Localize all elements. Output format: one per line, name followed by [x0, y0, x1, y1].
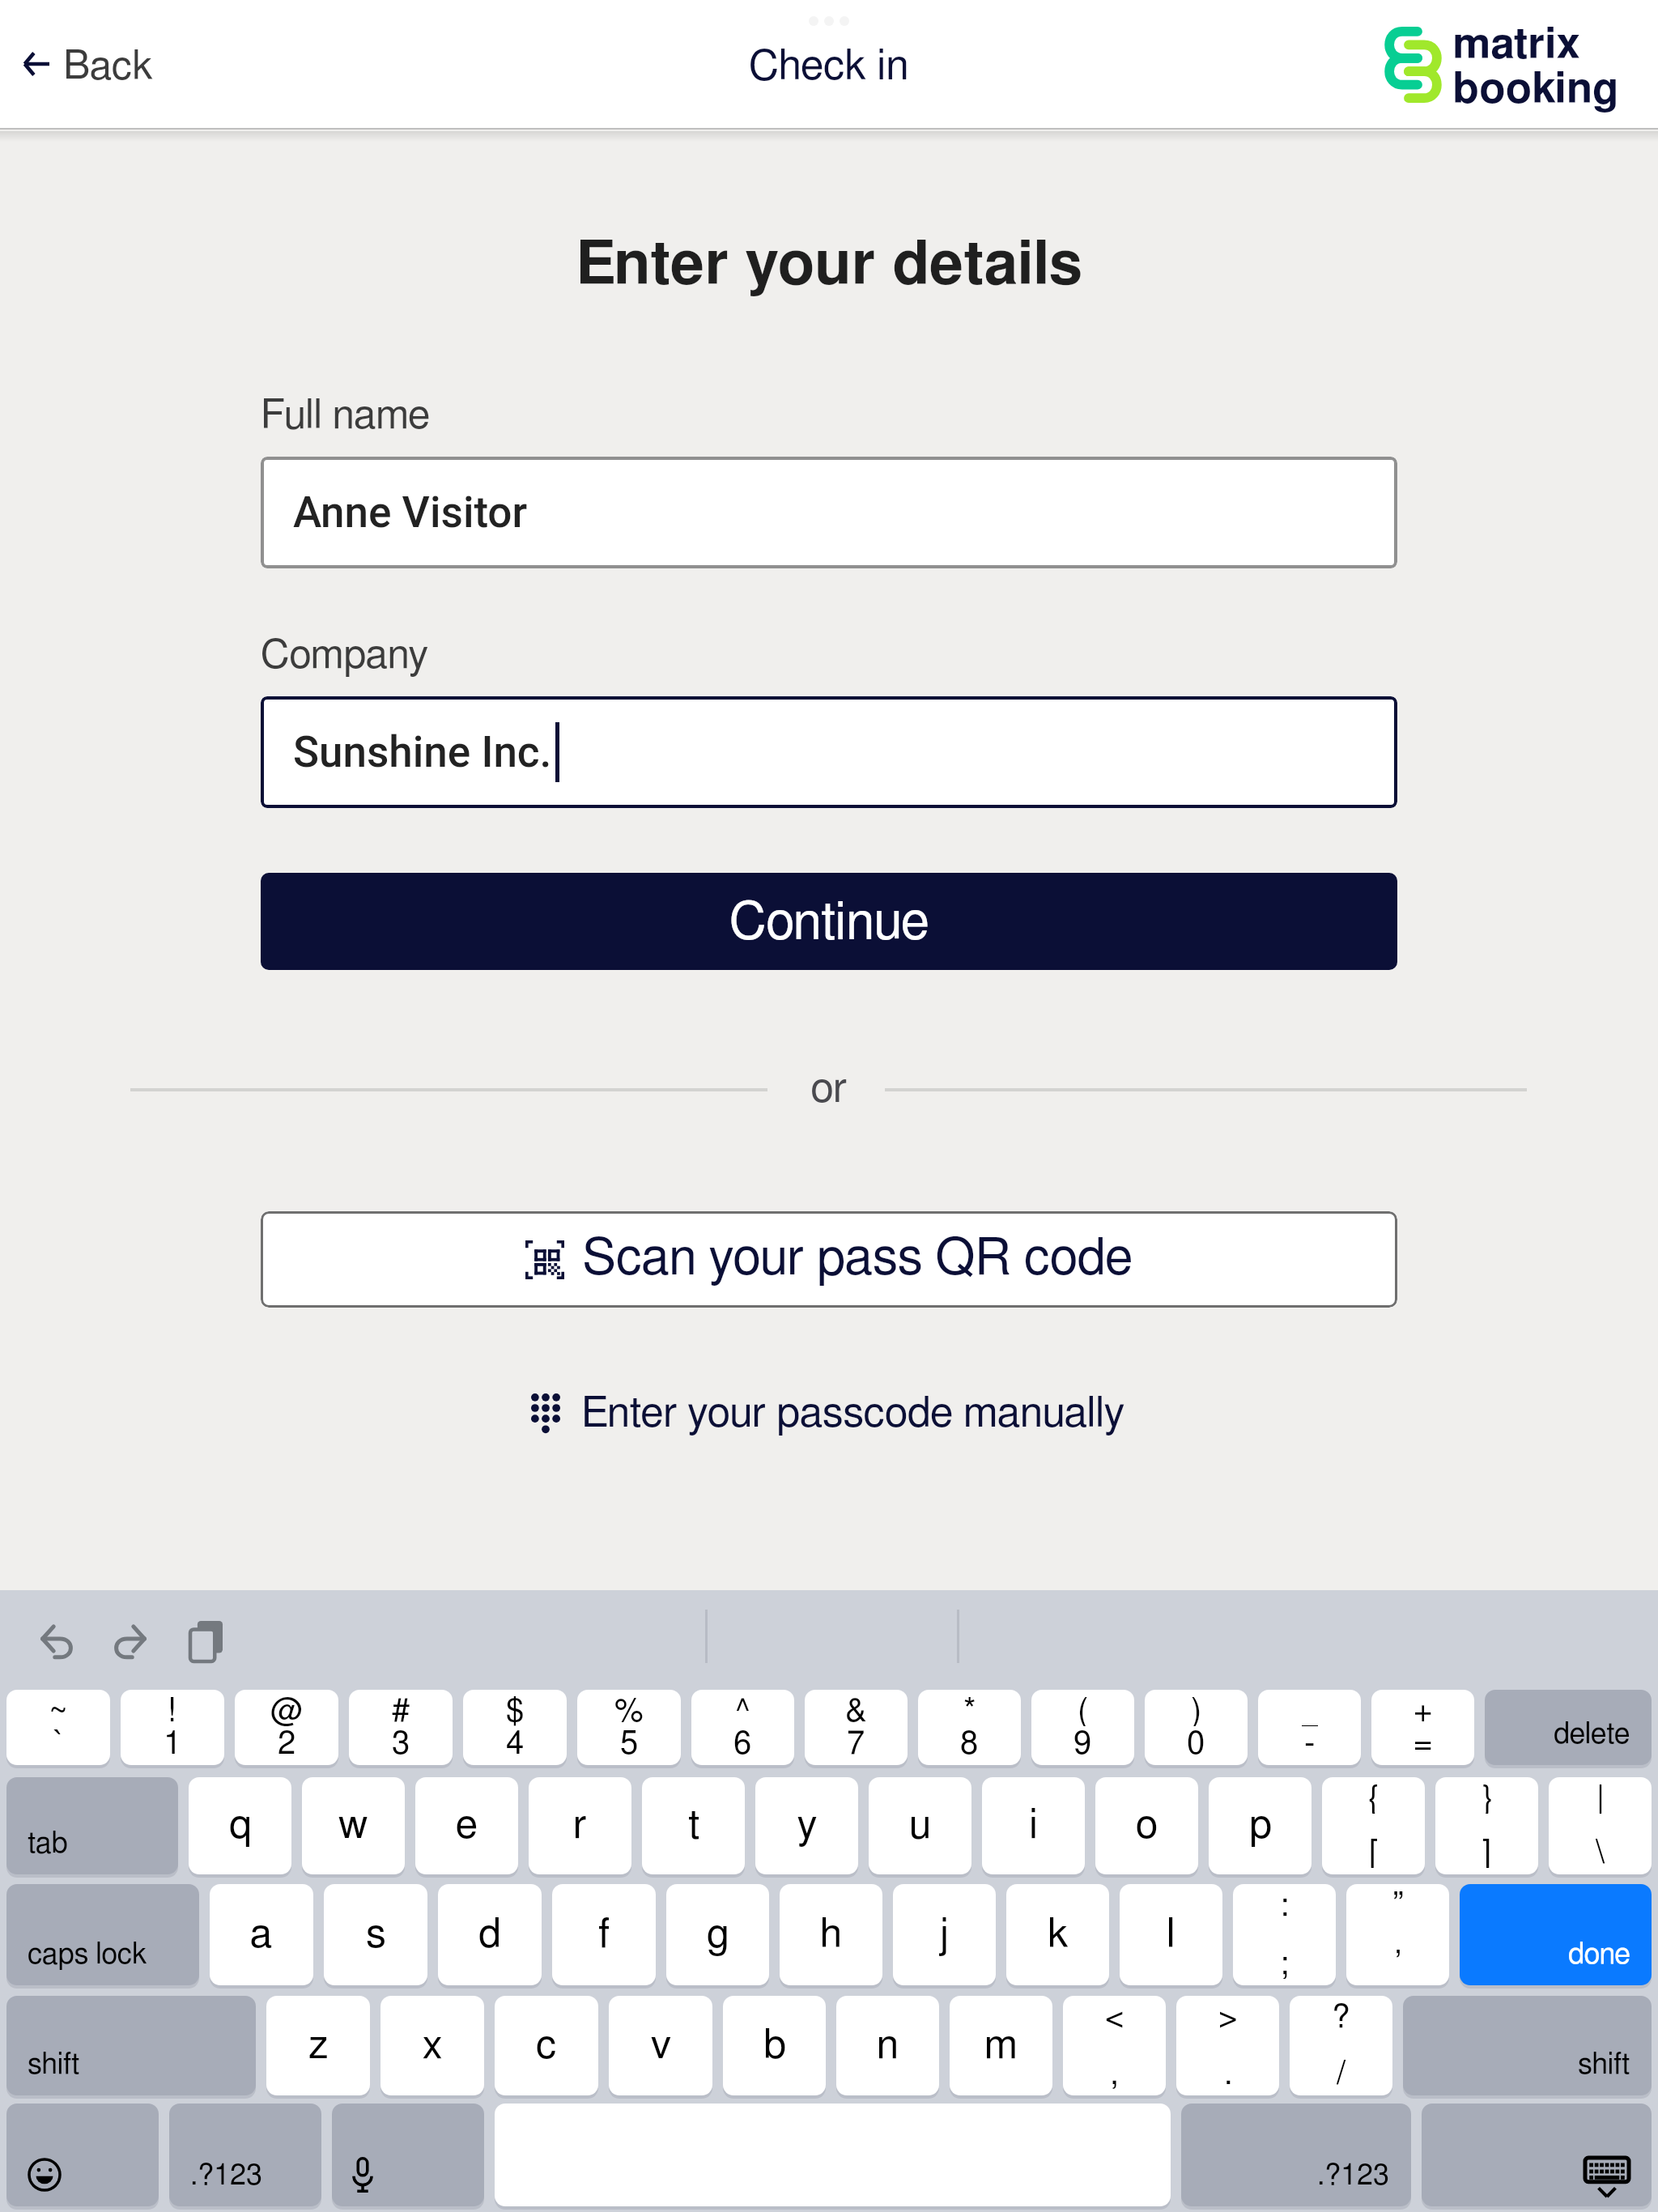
button[interactable]: shift [6, 1996, 256, 2095]
button[interactable]: z [266, 1996, 370, 2095]
button[interactable]: * [918, 1690, 1021, 1765]
button[interactable]: caps lock [6, 1884, 199, 1985]
button[interactable]: i [982, 1777, 1085, 1874]
button[interactable]: s [324, 1884, 427, 1985]
button[interactable]: b [723, 1996, 826, 2095]
other: Emoji [28, 2158, 62, 2192]
staticText: or [0, 1068, 1658, 1110]
button[interactable]: # [349, 1690, 453, 1765]
button[interactable]: ! [121, 1690, 224, 1765]
button[interactable]: Undo [27, 1611, 88, 1673]
button[interactable]: { [1322, 1777, 1425, 1874]
button[interactable]: ” [1346, 1884, 1449, 1985]
button[interactable]: .?123 [169, 2104, 321, 2206]
button[interactable]: ~ [6, 1690, 110, 1765]
button[interactable]: Back [10, 26, 166, 102]
staticText: . [1224, 2058, 1232, 2089]
staticText: e [456, 1806, 478, 1846]
other: Hide keyboard [1584, 2158, 1630, 2197]
staticText: x [423, 2026, 442, 2066]
button[interactable]: Enter your passcode manually [520, 1381, 1136, 1446]
button[interactable]: Sunshine Inc. [261, 696, 1397, 808]
staticText: matrix [1452, 24, 1580, 67]
button[interactable]: > [1176, 1996, 1279, 2095]
staticText: Continue [729, 898, 929, 950]
button[interactable]: ? [1290, 1996, 1392, 2095]
button[interactable]: k [1006, 1884, 1109, 1985]
button[interactable]: delete [1485, 1690, 1652, 1765]
button[interactable]: g [666, 1884, 769, 1985]
staticText: delete [1554, 1720, 1630, 1749]
staticText: 0 [1187, 1728, 1205, 1759]
button[interactable]: Emoji [6, 2104, 159, 2206]
button[interactable]: @ [235, 1690, 338, 1765]
staticText: tab [28, 1829, 68, 1858]
button[interactable]: w [302, 1777, 405, 1874]
button[interactable]: Redo [99, 1611, 160, 1673]
staticText: r [573, 1806, 587, 1846]
staticText: a [250, 1915, 273, 1955]
button[interactable]: .?123 [1181, 2104, 1411, 2206]
button[interactable]: & [805, 1690, 908, 1765]
button[interactable]: | [1549, 1777, 1652, 1874]
button[interactable]: shift [1403, 1996, 1652, 2095]
button[interactable]: + [1371, 1690, 1474, 1765]
staticText: ~ [50, 1695, 66, 1726]
staticText: * [963, 1695, 976, 1726]
button[interactable]: % [577, 1690, 681, 1765]
staticText: l [1167, 1915, 1175, 1955]
button[interactable]: c [495, 1996, 598, 2095]
button[interactable]: u [869, 1777, 971, 1874]
staticText: Enter your details [0, 235, 1658, 296]
button[interactable]: r [529, 1777, 631, 1874]
button[interactable]: < [1063, 1996, 1166, 2095]
button[interactable]: ^ [691, 1690, 794, 1765]
button[interactable]: f [552, 1884, 656, 1985]
staticText: booking [1452, 69, 1619, 112]
staticText: 2 [278, 1728, 296, 1759]
button[interactable]: Continue [261, 873, 1397, 970]
button[interactable]: ( [1031, 1690, 1134, 1765]
button[interactable]: l [1120, 1884, 1222, 1985]
button[interactable]: Paste [174, 1606, 237, 1678]
button[interactable]: a [210, 1884, 313, 1985]
staticText: # [392, 1695, 410, 1726]
button[interactable]: p [1209, 1777, 1312, 1874]
staticText: ! [167, 1695, 178, 1726]
button[interactable]: m [950, 1996, 1052, 2095]
staticText: f [598, 1915, 610, 1955]
button[interactable]: h [780, 1884, 882, 1985]
staticText: $ [506, 1695, 525, 1726]
button[interactable]: } [1435, 1777, 1538, 1874]
button[interactable]: Hide keyboard [1422, 2104, 1652, 2206]
button[interactable]: Dictate [332, 2104, 484, 2206]
button[interactable]: x [380, 1996, 484, 2095]
button[interactable]: y [755, 1777, 858, 1874]
staticText: shift [28, 2050, 80, 2079]
button[interactable]: tab [6, 1777, 178, 1874]
button[interactable]: j [893, 1884, 996, 1985]
staticText: i [1029, 1806, 1039, 1846]
button[interactable]: q [189, 1777, 291, 1874]
staticText: } [1482, 1783, 1493, 1814]
button[interactable]: : [1233, 1884, 1336, 1985]
button[interactable]: t [642, 1777, 745, 1874]
button[interactable]: v [609, 1996, 712, 2095]
button[interactable]: $ [463, 1690, 567, 1765]
button[interactable]: o [1095, 1777, 1198, 1874]
staticText: 5 [620, 1728, 639, 1759]
button[interactable]: done [1460, 1884, 1652, 1985]
button[interactable]: d [438, 1884, 542, 1985]
button[interactable]: Anne Visitor [261, 457, 1397, 568]
staticText: v [651, 2026, 671, 2066]
button[interactable]: n [836, 1996, 939, 2095]
button[interactable]: ) [1145, 1690, 1248, 1765]
button[interactable]: e [415, 1777, 518, 1874]
staticText: .?123 [1317, 2161, 1390, 2190]
staticText: .?123 [190, 2161, 263, 2190]
button[interactable]: Scan your pass QR code [261, 1211, 1397, 1308]
staticText: Check in [749, 45, 909, 87]
staticText: t [688, 1806, 699, 1846]
button[interactable]: _ [1258, 1690, 1361, 1765]
